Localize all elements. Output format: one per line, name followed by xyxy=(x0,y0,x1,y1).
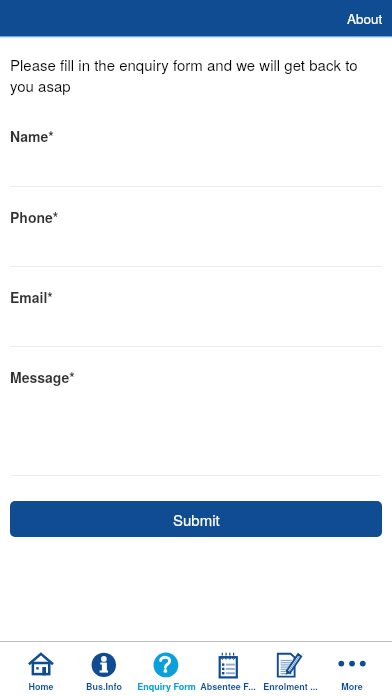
staticText: Please fill in the enquiry form and we w… xyxy=(10,54,382,96)
button[interactable]: More xyxy=(321,642,383,693)
staticText: Name* xyxy=(10,126,54,146)
staticText: Enrolment ... xyxy=(263,680,318,693)
button[interactable]: Enquiry Form xyxy=(135,642,197,693)
other: Absentee Form xyxy=(215,652,241,678)
staticText: Phone* xyxy=(10,207,59,227)
staticText: Bus.Info xyxy=(86,680,122,693)
staticText: Enquiry Form xyxy=(137,680,196,693)
button[interactable]: Absentee Form xyxy=(197,642,259,693)
staticText: Email* xyxy=(10,287,53,307)
other: Enquiry Form xyxy=(153,652,179,678)
other: Bus Info xyxy=(91,652,117,678)
staticText: About xyxy=(347,9,383,28)
staticText: Absentee F... xyxy=(200,680,256,693)
staticText: More xyxy=(341,680,363,693)
other: Home xyxy=(28,652,54,678)
staticText: Home xyxy=(28,680,54,693)
other: More xyxy=(339,652,365,678)
button[interactable]: Submit xyxy=(10,501,382,537)
button[interactable]: About xyxy=(335,3,392,34)
other: Enrolment Form xyxy=(277,652,303,678)
button[interactable]: Bus Info xyxy=(72,642,135,693)
staticText: Message* xyxy=(10,367,75,387)
button[interactable]: Home xyxy=(9,642,72,693)
button[interactable]: Enrolment Form xyxy=(259,642,321,693)
staticText: Submit xyxy=(173,509,220,530)
